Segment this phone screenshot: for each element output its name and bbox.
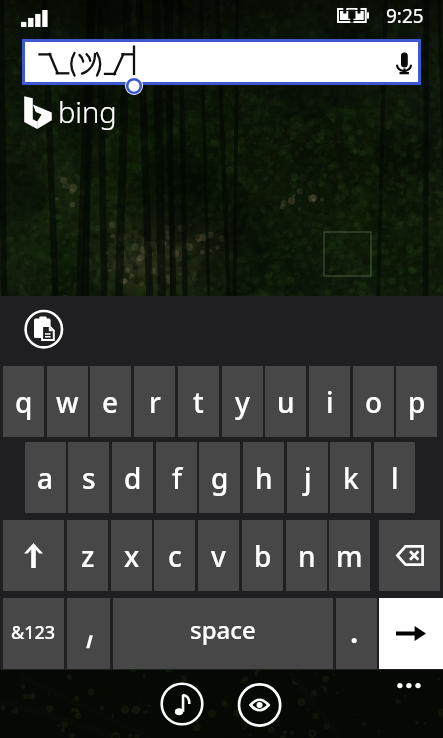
button[interactable]: u [265, 366, 306, 437]
staticText: e [102, 383, 119, 421]
button[interactable]: Paste [24, 309, 64, 349]
staticText: x [124, 537, 140, 575]
button[interactable]: r [134, 366, 175, 437]
staticText: r [149, 383, 161, 421]
button[interactable]: c [154, 520, 195, 591]
staticText: a [37, 459, 54, 497]
staticText: y [235, 383, 250, 421]
button[interactable]: space [113, 598, 333, 669]
button[interactable]: &123 [3, 598, 64, 669]
button[interactable]: x [111, 520, 152, 591]
staticText: s [82, 459, 96, 497]
staticText: q [15, 383, 33, 421]
staticText: p [408, 383, 426, 421]
staticText: n [298, 537, 316, 575]
staticText: w [56, 383, 79, 421]
button[interactable]: Enter [379, 598, 443, 669]
button[interactable]: t [178, 366, 219, 437]
button[interactable]: l [374, 442, 415, 513]
button[interactable]: g [199, 442, 240, 513]
button[interactable]: b [242, 520, 283, 591]
staticText: 9:25 [386, 3, 424, 29]
staticText: space [190, 613, 256, 646]
button[interactable]: h [243, 442, 284, 513]
button[interactable]: Music search [161, 683, 203, 725]
button[interactable]: Voice search [25, 42, 418, 82]
staticText: g [211, 459, 229, 497]
button[interactable]: y [222, 366, 263, 437]
staticText: l [391, 459, 399, 497]
button[interactable]: s [68, 442, 109, 513]
button[interactable]: f [156, 442, 197, 513]
staticText: c [168, 537, 182, 575]
button[interactable]: w [47, 366, 88, 437]
staticText: z [81, 537, 95, 575]
button[interactable]: v [198, 520, 239, 591]
button[interactable]: e [90, 366, 131, 437]
button[interactable]: Vision search [239, 684, 281, 726]
staticText: &123 [11, 620, 56, 645]
button[interactable]: z [67, 520, 108, 591]
staticText: h [255, 459, 273, 497]
button[interactable]: o [353, 366, 394, 437]
staticText: t [193, 383, 204, 421]
button[interactable]: m [329, 520, 370, 591]
staticText: k [343, 459, 359, 497]
button[interactable]: p [396, 366, 437, 437]
button[interactable]: Comma [67, 598, 110, 669]
button[interactable]: a [25, 442, 66, 513]
button[interactable]: j [287, 442, 328, 513]
staticText: i [326, 383, 334, 421]
button[interactable]: Period [336, 598, 377, 669]
staticText: f [172, 459, 182, 497]
button[interactable]: Voice search [370, 42, 418, 82]
button[interactable]: q [3, 366, 44, 437]
button[interactable]: Shift [3, 520, 64, 591]
button[interactable]: n [286, 520, 327, 591]
staticText: d [124, 459, 142, 497]
staticText: j [304, 459, 312, 497]
staticText: v [211, 537, 226, 575]
staticText: bing [58, 92, 117, 131]
staticText: u [277, 383, 295, 421]
button[interactable]: More options [392, 674, 426, 697]
staticText: o [365, 383, 383, 421]
button[interactable]: Backspace [379, 520, 440, 591]
button[interactable]: i [309, 366, 350, 437]
button[interactable]: d [112, 442, 153, 513]
button[interactable]: k [330, 442, 371, 513]
staticText: m [336, 537, 363, 575]
button[interactable]: Hotspot [324, 232, 371, 276]
staticText: b [254, 537, 272, 575]
